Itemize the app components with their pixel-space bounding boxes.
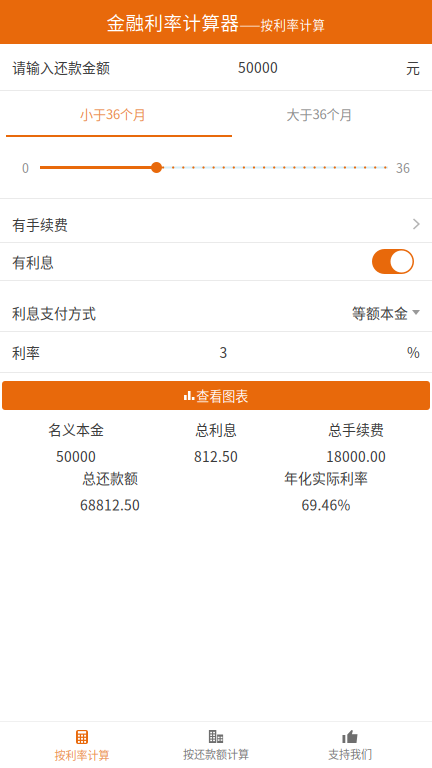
staticText: % xyxy=(407,342,420,362)
staticText: 36 xyxy=(396,158,410,176)
staticText: 按利率计算 xyxy=(54,747,109,763)
staticText: 大于36个月 xyxy=(286,104,352,123)
staticText: 按还款额计算 xyxy=(183,746,249,762)
button[interactable]: 有利息 xyxy=(372,249,414,274)
staticText: 18000.00 xyxy=(326,446,386,466)
staticText: 利率 xyxy=(12,342,40,362)
button[interactable]: 按利率计算 xyxy=(0,722,164,768)
button[interactable]: 有手续费 xyxy=(0,199,432,242)
staticText: 小于36个月 xyxy=(80,104,146,123)
button[interactable]: 查看图表 xyxy=(2,381,430,410)
staticText: 年化实际利率 xyxy=(284,467,368,487)
staticText: 元 xyxy=(406,57,420,77)
staticText: 812.50 xyxy=(194,446,238,466)
staticText: 50000 xyxy=(56,446,96,466)
staticText: 3 xyxy=(219,342,227,362)
button[interactable]: 按还款额计算 xyxy=(164,722,268,768)
staticText: ——按利率计算 xyxy=(239,15,325,33)
staticText: 0 xyxy=(22,158,29,176)
staticText: 查看图表 xyxy=(196,386,248,405)
staticText: 有手续费 xyxy=(12,214,68,234)
staticText: 50000 xyxy=(238,57,278,77)
staticText: 支持我们 xyxy=(328,746,372,762)
staticText: 名义本金 xyxy=(48,419,104,439)
button[interactable]: 大于36个月 xyxy=(226,91,413,137)
staticText: 请输入还款金额 xyxy=(12,57,110,77)
button[interactable]: 支持我们 xyxy=(268,722,432,768)
button[interactable]: 利息支付方式 xyxy=(0,281,432,331)
staticText: 利息支付方式 xyxy=(12,302,96,323)
staticText: 总利息 xyxy=(195,419,237,439)
staticText: 总手续费 xyxy=(328,419,384,439)
staticText: 69.46% xyxy=(301,494,350,515)
button[interactable]: 小于36个月 xyxy=(0,91,226,137)
staticText: 68812.50 xyxy=(80,494,140,515)
staticText: 等额本金 xyxy=(352,302,408,323)
staticText: 金融利率计算器 xyxy=(106,9,239,35)
staticText: 有利息 xyxy=(12,251,54,272)
staticText: 总还款额 xyxy=(82,467,138,487)
